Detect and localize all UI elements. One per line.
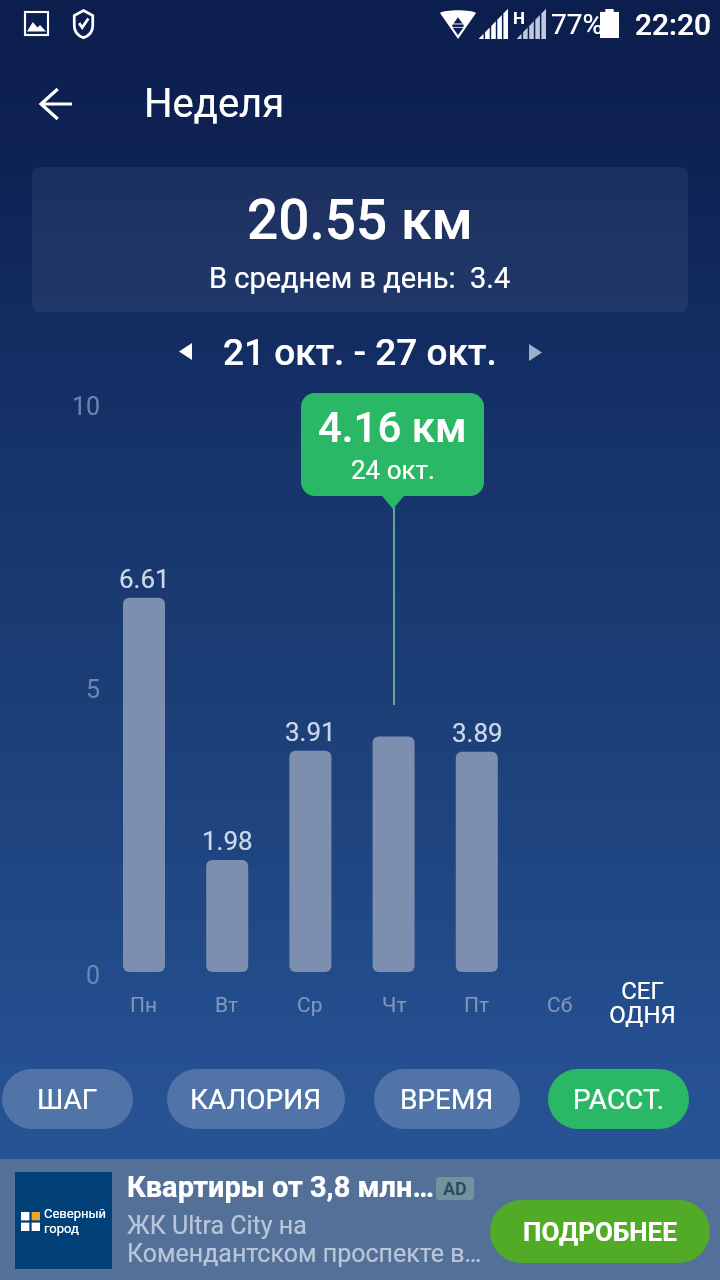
staticText: 20.55 км <box>247 188 473 252</box>
button[interactable]: РАССТ. <box>548 1069 689 1129</box>
button[interactable]: КАЛОРИЯ <box>167 1069 345 1129</box>
staticText: 21 окт. - 27 окт. <box>223 331 497 374</box>
staticText: Пт <box>464 993 490 1018</box>
staticText: ПОДРОБНЕЕ <box>523 1217 677 1247</box>
button[interactable]: 20.55 км <box>32 167 688 312</box>
button[interactable]: ШАГ <box>2 1069 133 1129</box>
staticText: 22:20 <box>635 7 712 42</box>
button[interactable]: Previous week <box>159 325 211 377</box>
staticText: город <box>44 1221 79 1236</box>
staticText: Неделя <box>144 80 285 127</box>
staticText: 10 <box>72 392 101 421</box>
staticText: ВРЕМЯ <box>400 1083 494 1116</box>
button[interactable]: Back <box>23 71 89 137</box>
staticText: 0 <box>86 961 101 990</box>
staticText: КАЛОРИЯ <box>190 1083 322 1116</box>
staticText: Северный <box>44 1206 107 1221</box>
staticText: Пн <box>130 993 158 1018</box>
button[interactable]: Северный <box>0 1159 720 1280</box>
staticText: 3.91 <box>285 717 336 747</box>
staticText: Квартиры от 3,8 млн… <box>127 1170 434 1204</box>
staticText: 24 окт. <box>351 455 435 485</box>
staticText: 77% <box>551 8 603 41</box>
staticText: 6.61 <box>119 564 170 594</box>
staticText: 4.16 км <box>318 403 467 452</box>
staticText: Вт <box>215 993 239 1018</box>
staticText: Комендантском проспекте в… <box>127 1239 482 1268</box>
staticText: В среднем в день: 3.4 <box>209 261 511 295</box>
staticText: Чт <box>382 993 407 1018</box>
staticText: 1.98 <box>202 826 253 856</box>
staticText: ШАГ <box>37 1083 98 1116</box>
button[interactable]: ВРЕМЯ <box>374 1069 520 1129</box>
button[interactable]: Next week <box>509 326 561 378</box>
staticText: РАССТ. <box>573 1083 665 1116</box>
button[interactable]: ПОДРОБНЕЕ <box>490 1200 710 1263</box>
staticText: СЕГ ОДНЯ <box>609 977 676 1028</box>
staticText: 3.89 <box>452 718 503 748</box>
staticText: 5 <box>86 675 101 704</box>
staticText: Сб <box>547 993 573 1018</box>
staticText: Ср <box>297 993 323 1018</box>
staticText: ЖК Ultra City на <box>127 1211 307 1240</box>
staticText: H <box>513 8 526 28</box>
staticText: AD <box>443 1178 467 1199</box>
